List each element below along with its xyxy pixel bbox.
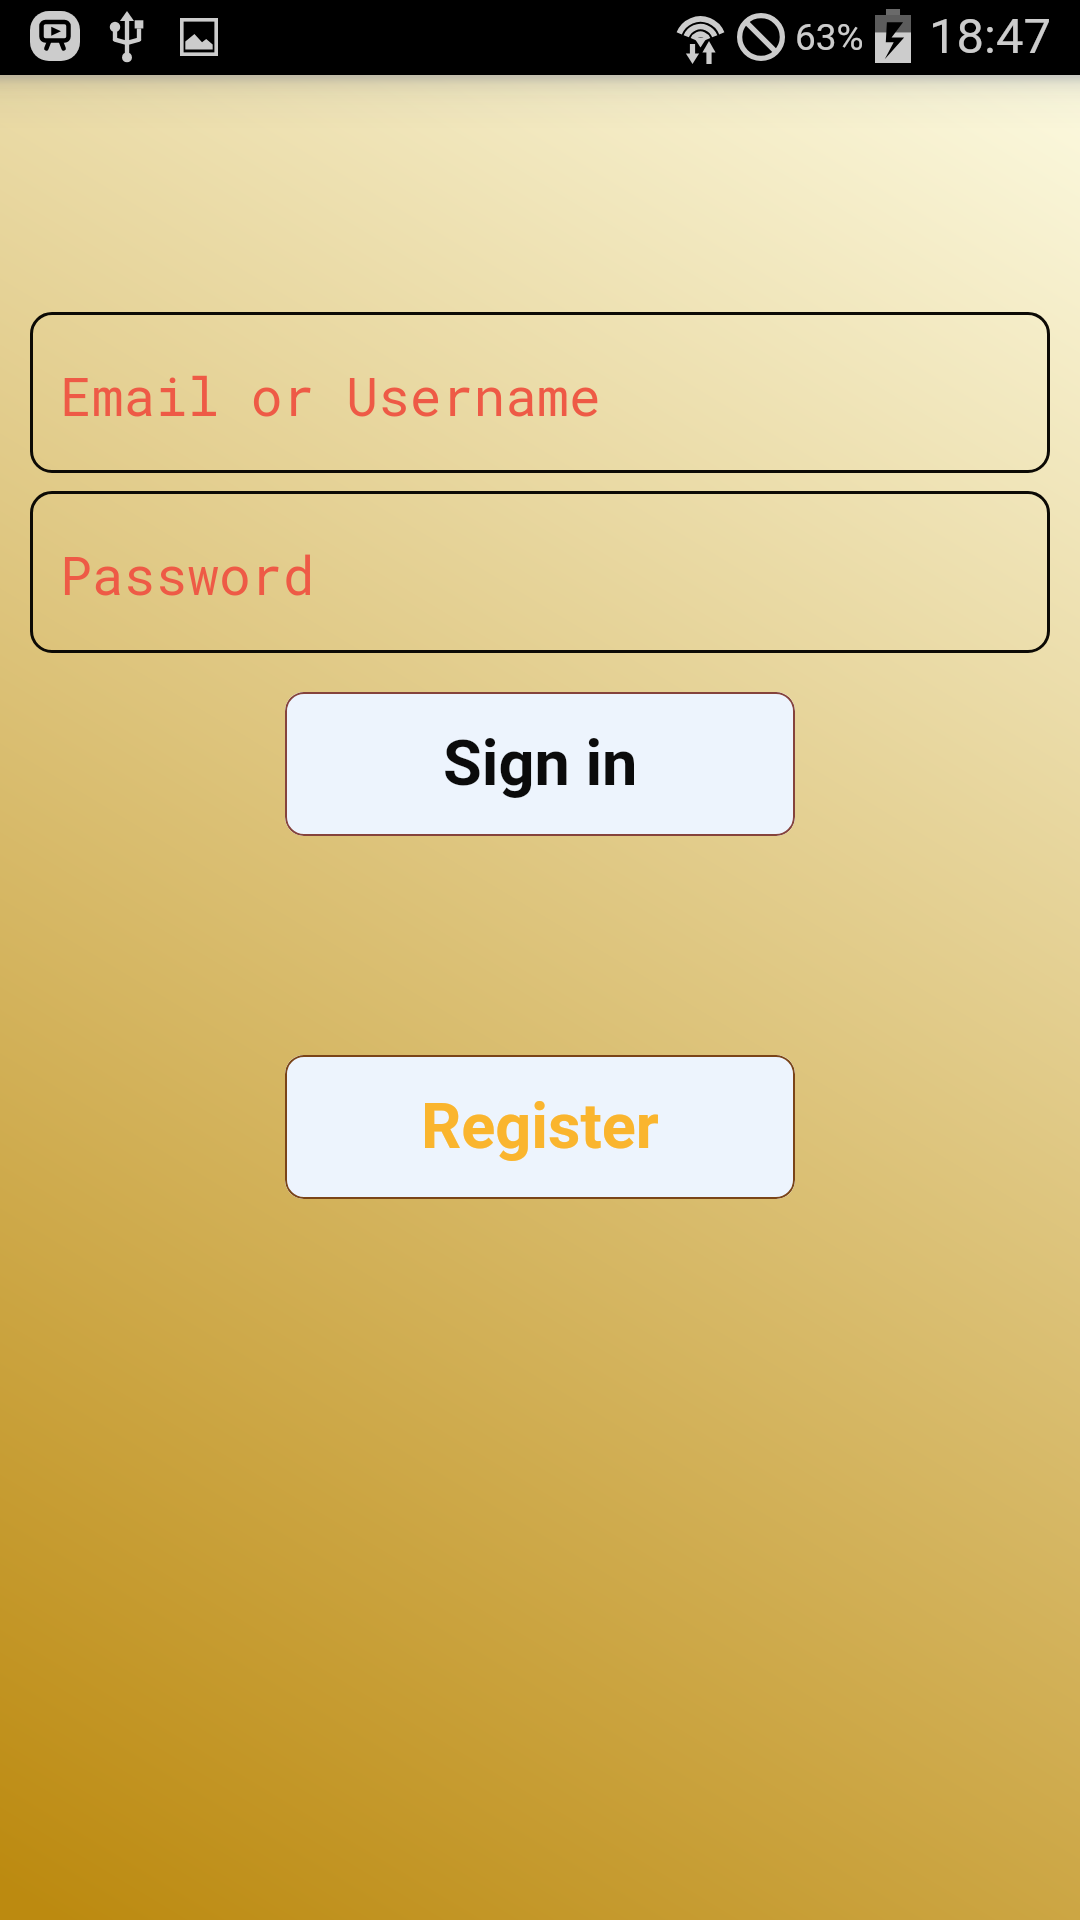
other: Screen recording [28,9,82,63]
staticText: Register [421,1090,659,1164]
staticText: Email or Username [60,360,601,430]
staticText: Sign in [443,727,638,801]
button[interactable]: Sign in [285,692,795,836]
button[interactable]: Register [285,1055,795,1199]
staticText: 63% [795,16,864,59]
staticText: Password [60,539,315,609]
button[interactable]: Password [30,491,1050,653]
other: Battery charging 63 percent [873,7,913,47]
button[interactable]: Email or Username [30,312,1050,473]
other: USB connected [110,9,144,43]
staticText: 18:47 [929,8,1052,65]
other: Wi-Fi connected [673,8,728,63]
other: Do not disturb [735,11,787,63]
other: Screenshot saved [178,16,220,58]
